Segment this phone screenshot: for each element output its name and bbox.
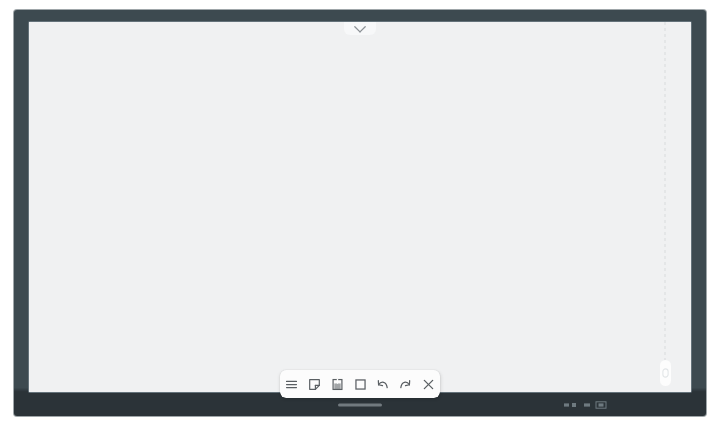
button[interactable]: Side handle [660,360,671,386]
button[interactable]: Import [326,370,349,398]
button[interactable]: Menu [280,370,303,398]
button[interactable]: Close [417,370,440,398]
button[interactable]: Redo [394,370,417,398]
button[interactable]: Expand menu [344,22,376,35]
button[interactable]: Shape [349,370,372,398]
button[interactable]: Note [303,370,326,398]
button[interactable]: Undo [371,370,394,398]
